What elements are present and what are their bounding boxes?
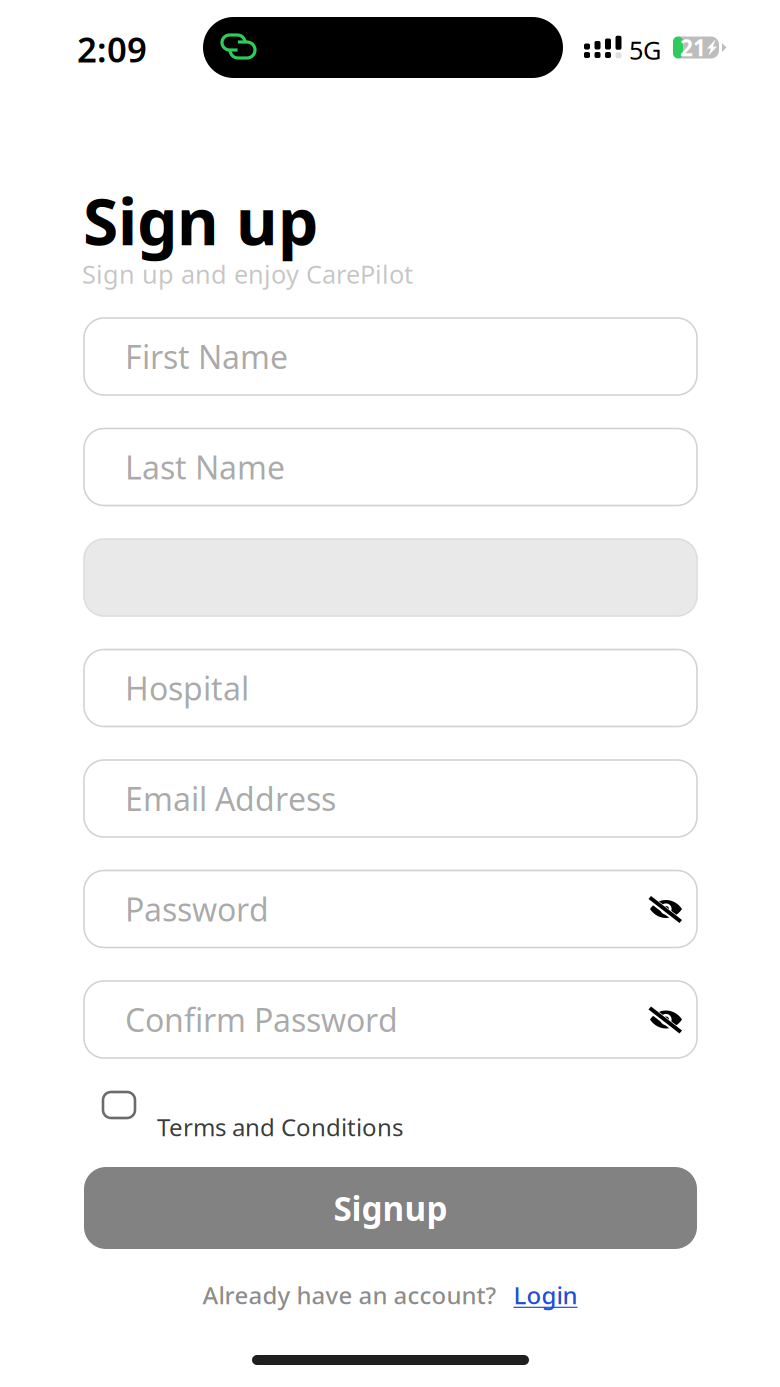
button[interactable]: Last Name: [84, 428, 697, 505]
staticText: Sign up and enjoy CarePilot: [82, 257, 413, 291]
staticText: 5G: [629, 33, 661, 67]
staticText: Hospital: [125, 667, 249, 709]
button[interactable]: Hospital: [84, 649, 697, 726]
button[interactable]: Password: [84, 870, 697, 947]
staticText: 2:09: [77, 26, 147, 72]
button[interactable]: Email Address: [84, 760, 697, 837]
staticText: Signup: [333, 1186, 447, 1230]
button[interactable]: Login: [496, 1279, 577, 1311]
staticText: Already have an account?: [202, 1279, 496, 1311]
staticText: Confirm Password: [125, 998, 398, 1041]
staticText: Last Name: [125, 446, 285, 488]
staticText: Password: [125, 888, 269, 930]
staticText: Email Address: [125, 777, 336, 820]
button[interactable]: Show password: [635, 981, 697, 1058]
staticText: Terms and Conditions: [157, 1111, 403, 1143]
staticText: 21: [680, 32, 706, 62]
button[interactable]: Confirm Password: [84, 981, 697, 1058]
staticText: First Name: [125, 335, 288, 378]
button[interactable]: Terms and Conditions: [84, 1080, 697, 1150]
button[interactable]: Signup: [84, 1167, 697, 1249]
staticText: Login: [513, 1279, 577, 1311]
staticText: Sign up: [83, 178, 318, 263]
button[interactable]: First Name: [84, 318, 697, 395]
button[interactable]: Show password: [635, 870, 697, 947]
